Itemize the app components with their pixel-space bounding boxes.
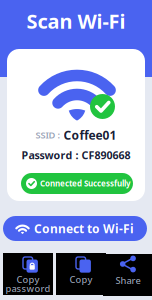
staticText: Copy (16, 273, 39, 286)
staticText: password (5, 282, 50, 295)
button[interactable]: Share (103, 254, 152, 296)
button[interactable]: Copy (56, 253, 106, 295)
button[interactable]: Connect to Wi-Fi (3, 216, 147, 241)
staticText: Coffee01 (63, 127, 116, 143)
staticText: Password : CF890668 (21, 148, 130, 162)
staticText: Scan Wi-Fi (26, 8, 125, 34)
staticText: Share (115, 274, 140, 287)
button[interactable]: Copy (3, 253, 53, 295)
staticText: Connected Successfully (40, 178, 131, 189)
staticText: SSID : (35, 129, 60, 141)
staticText: Copy (69, 273, 92, 286)
staticText: Connect to Wi-Fi (34, 220, 134, 236)
